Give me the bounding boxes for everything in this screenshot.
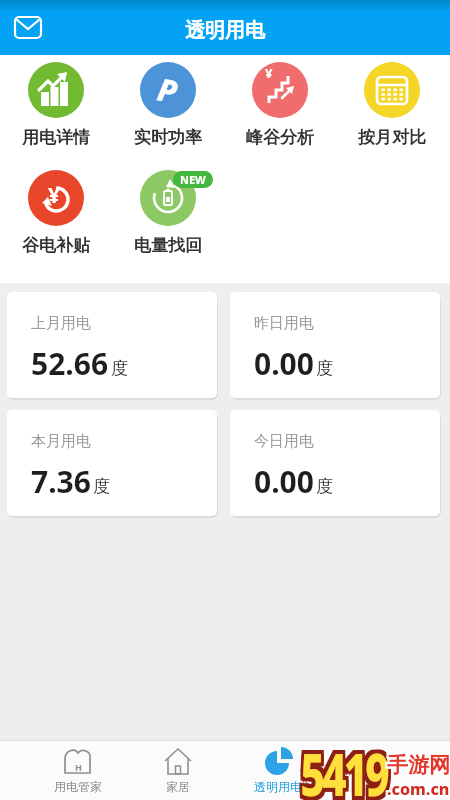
button[interactable]: H bbox=[27, 740, 128, 800]
staticText: 7.36 bbox=[31, 461, 91, 502]
staticText: 手游网 bbox=[385, 754, 448, 780]
staticText: .com.cn bbox=[385, 776, 448, 798]
staticText: 谷电补贴 bbox=[22, 235, 90, 256]
staticText: 5419 bbox=[298, 738, 384, 800]
staticText: 我的 bbox=[366, 779, 390, 794]
staticText: .com.cn bbox=[389, 776, 450, 798]
button[interactable]: NEW bbox=[112, 170, 224, 256]
button[interactable]: 上月用电 bbox=[7, 292, 217, 398]
staticText: 上月用电 bbox=[31, 314, 91, 333]
button[interactable]: 昨日用电 bbox=[230, 292, 440, 398]
staticText: .com.cn bbox=[389, 780, 450, 800]
staticText: 手游网 bbox=[387, 750, 450, 776]
button[interactable] bbox=[15, 17, 41, 38]
button[interactable]: ¥ bbox=[0, 170, 112, 256]
staticText: 透明用电 bbox=[254, 779, 302, 794]
staticText: 手游网 bbox=[387, 754, 450, 780]
staticText: 度 bbox=[93, 476, 110, 497]
staticText: 5419 bbox=[303, 730, 390, 800]
staticText: 5419 bbox=[298, 734, 384, 800]
staticText: 今日用电 bbox=[254, 432, 314, 451]
staticText: 5419 bbox=[303, 734, 390, 800]
staticText: 手游网 bbox=[389, 754, 450, 780]
staticText: H bbox=[75, 761, 82, 773]
staticText: 昨日用电 bbox=[254, 314, 314, 333]
staticText: P bbox=[154, 68, 181, 112]
button[interactable]: 今日用电 bbox=[230, 410, 440, 516]
staticText: .com.cn bbox=[387, 780, 450, 800]
staticText: 度 bbox=[111, 358, 128, 379]
button[interactable]: 本月用电 bbox=[7, 410, 217, 516]
staticText: 5419 bbox=[301, 734, 387, 800]
staticText: .com.cn bbox=[385, 780, 448, 800]
staticText: .com.cn bbox=[385, 778, 448, 800]
button[interactable]: 我的 bbox=[328, 740, 428, 800]
button[interactable]: 家居 bbox=[128, 740, 228, 800]
button[interactable]: 透明用电 bbox=[228, 740, 328, 800]
staticText: .com.cn bbox=[387, 778, 450, 800]
staticText: 0.00 bbox=[254, 343, 314, 384]
staticText: 用电管家 bbox=[54, 779, 102, 794]
staticText: 手游网 bbox=[389, 750, 450, 776]
staticText: 度 bbox=[316, 358, 333, 379]
staticText: 本月用电 bbox=[31, 432, 91, 451]
staticText: 电量找回 bbox=[134, 235, 202, 256]
staticText: 按月对比 bbox=[358, 127, 426, 148]
staticText: ¥ bbox=[265, 64, 273, 82]
staticText: 实时功率 bbox=[134, 127, 202, 148]
staticText: 5419 bbox=[301, 730, 387, 800]
staticText: .com.cn bbox=[387, 776, 450, 798]
button[interactable]: ¥ bbox=[224, 62, 336, 148]
staticText: 0.00 bbox=[254, 461, 314, 502]
button[interactable]: P bbox=[112, 62, 224, 148]
staticText: 手游网 bbox=[389, 752, 450, 778]
staticText: .com.cn bbox=[389, 778, 450, 800]
staticText: 5419 bbox=[303, 738, 390, 800]
staticText: 手游网 bbox=[387, 752, 450, 778]
staticText: 透明用电 bbox=[185, 18, 265, 43]
staticText: NEW bbox=[180, 172, 206, 187]
staticText: 峰谷分析 bbox=[246, 127, 314, 148]
staticText: 5419 bbox=[298, 730, 384, 800]
staticText: 5419 bbox=[301, 738, 387, 800]
staticText: 手游网 bbox=[385, 752, 448, 778]
button[interactable]: 按月对比 bbox=[336, 62, 448, 148]
button[interactable]: 用电详情 bbox=[0, 62, 112, 148]
staticText: 52.66 bbox=[31, 343, 109, 384]
staticText: 用电详情 bbox=[22, 127, 90, 148]
staticText: 手游网 bbox=[385, 750, 448, 776]
staticText: ¥ bbox=[48, 181, 61, 210]
staticText: 家居 bbox=[166, 779, 190, 794]
staticText: 度 bbox=[316, 476, 333, 497]
